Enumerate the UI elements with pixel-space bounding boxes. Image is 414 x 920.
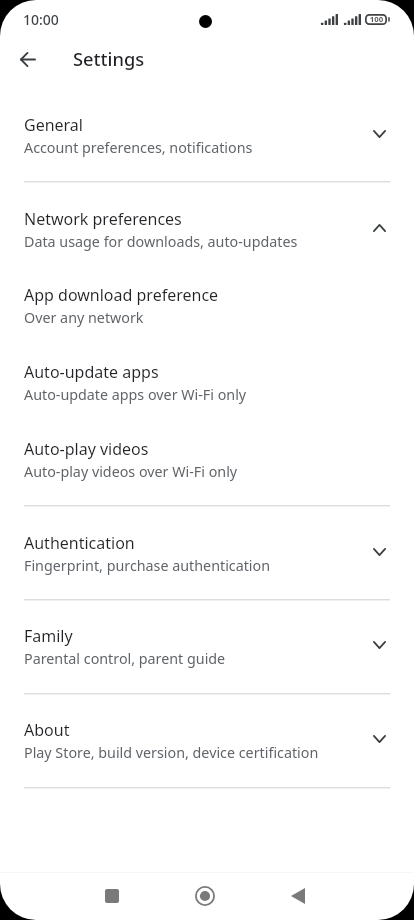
staticText: App download preference bbox=[24, 284, 219, 306]
button[interactable]: App download preference bbox=[0, 258, 414, 335]
button[interactable]: Auto-play videos bbox=[0, 412, 414, 505]
button[interactable]: Authentication bbox=[0, 506, 414, 599]
button[interactable]: Back bbox=[274, 872, 322, 920]
button[interactable]: Expand bbox=[358, 531, 400, 573]
button[interactable]: Expand bbox=[358, 718, 400, 760]
button[interactable]: Back bbox=[6, 37, 50, 81]
button[interactable]: Expand bbox=[358, 624, 400, 666]
button[interactable]: Network preferences bbox=[0, 182, 414, 258]
staticText: Over any network bbox=[24, 308, 144, 327]
staticText: Fingerprint, purchase authentication bbox=[24, 556, 271, 575]
button[interactable]: Home bbox=[181, 872, 229, 920]
staticText: Auto-play videos bbox=[24, 438, 149, 460]
staticText: 10:00 bbox=[23, 10, 59, 29]
button[interactable]: Expand bbox=[358, 113, 400, 155]
staticText: About bbox=[24, 719, 70, 741]
button[interactable]: General bbox=[0, 104, 414, 181]
staticText: Auto-update apps bbox=[24, 361, 159, 383]
button[interactable]: Collapse bbox=[358, 207, 400, 249]
staticText: Auto-play videos over Wi-Fi only bbox=[24, 462, 238, 481]
staticText: Account preferences, notifications bbox=[24, 138, 253, 157]
button[interactable]: Family bbox=[0, 600, 414, 693]
staticText: General bbox=[24, 114, 83, 136]
staticText: Network preferences bbox=[24, 208, 182, 230]
staticText: Data usage for downloads, auto-updates bbox=[24, 232, 298, 251]
button[interactable]: Recent apps bbox=[88, 872, 136, 920]
staticText: 100 bbox=[367, 14, 386, 25]
staticText: Family bbox=[24, 625, 73, 647]
button[interactable]: Auto-update apps bbox=[0, 335, 414, 412]
staticText: Auto-update apps over Wi-Fi only bbox=[24, 385, 247, 404]
staticText: Parental control, parent guide bbox=[24, 649, 226, 668]
staticText: Authentication bbox=[24, 532, 135, 554]
staticText: Settings bbox=[73, 46, 145, 71]
button[interactable]: About bbox=[0, 694, 414, 787]
staticText: Play Store, build version, device certif… bbox=[24, 743, 319, 762]
